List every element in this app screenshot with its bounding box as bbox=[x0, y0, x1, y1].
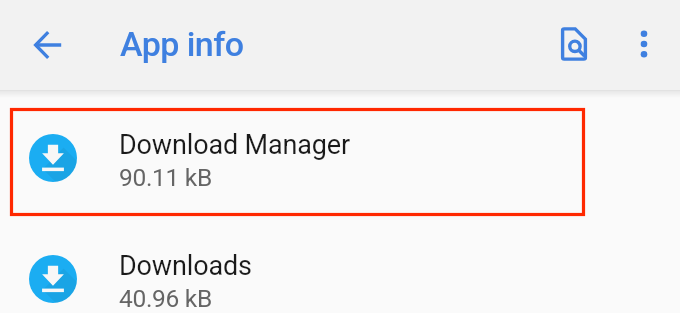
button[interactable]: More options bbox=[618, 18, 670, 70]
staticText: 90.11 kB bbox=[119, 163, 212, 192]
staticText: Download Manager bbox=[119, 129, 350, 161]
staticText: Downloads bbox=[119, 250, 252, 282]
button[interactable]: Download Manager bbox=[0, 98, 680, 219]
staticText: 40.96 kB bbox=[119, 284, 212, 313]
button[interactable]: Find in page bbox=[548, 18, 600, 70]
button[interactable]: Downloads bbox=[0, 219, 680, 313]
staticText: App info bbox=[120, 24, 244, 64]
button[interactable]: Back bbox=[24, 21, 72, 69]
